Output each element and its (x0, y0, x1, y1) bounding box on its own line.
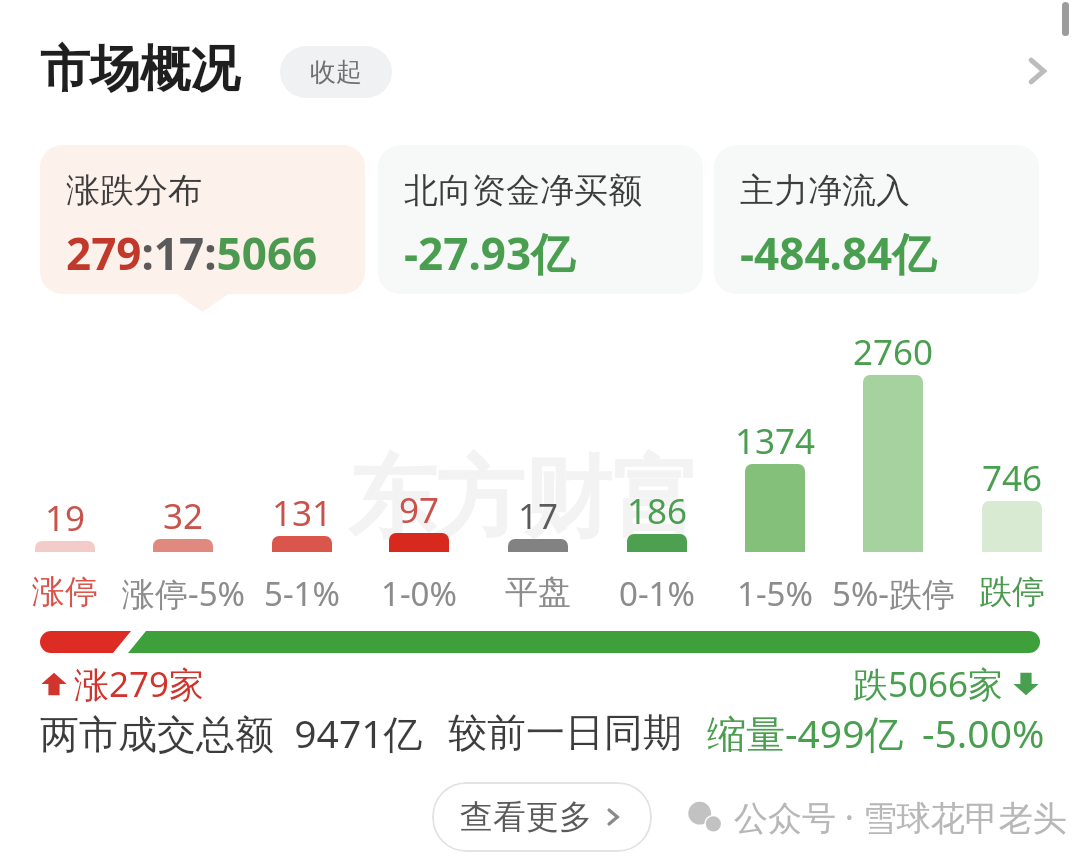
staticText: 市场概况 (40, 38, 240, 101)
staticText: 涨停-5% (122, 571, 245, 616)
staticText: 查看更多 (460, 796, 592, 838)
staticText: 跌5066家 (853, 660, 1004, 708)
button[interactable]: 涨跌分布 (40, 145, 365, 294)
staticText: 涨跌分布 (66, 169, 202, 212)
staticText: 32 (163, 492, 204, 540)
staticText: 5-1% (264, 571, 340, 616)
staticText: 746 (982, 454, 1043, 502)
staticText: 1-0% (381, 571, 457, 616)
staticText: 北向资金净买额 (404, 169, 642, 212)
staticText: 涨279家 (74, 660, 205, 708)
staticText: 东方财富 (348, 443, 700, 554)
button[interactable]: 北向资金净买额 (378, 145, 703, 294)
staticText: 131 (272, 489, 333, 537)
staticText: 缩量-499亿 (707, 706, 904, 759)
staticText: 涨停 (32, 571, 98, 613)
button[interactable]: 主力净流入 (714, 145, 1039, 294)
staticText: 公众号 · 雪球花甲老头 (734, 794, 1067, 840)
staticText: 收起 (310, 56, 362, 89)
staticText: 较前一日同期 (448, 708, 682, 757)
staticText: 97 (399, 486, 440, 534)
staticText: 主力净流入 (740, 169, 910, 212)
staticText: 1374 (735, 417, 816, 465)
staticText: 279:17:5066 (66, 223, 318, 283)
button[interactable]: 收起 (280, 46, 392, 98)
staticText: -484.84亿 (740, 223, 937, 283)
button[interactable]: 查看更多 (432, 782, 652, 852)
staticText: 0-1% (619, 571, 695, 616)
staticText: -5.00% (922, 706, 1045, 759)
button[interactable]: More (1008, 42, 1066, 100)
staticText: 两市成交总额 9471亿 (40, 706, 423, 759)
staticText: 19 (45, 494, 86, 542)
staticText: 平盘 (505, 571, 571, 613)
staticText: 2760 (853, 328, 934, 376)
staticText: 1-5% (737, 571, 813, 616)
staticText: 5%-跌停 (832, 571, 955, 616)
staticText: 跌停 (979, 571, 1045, 613)
staticText: -27.93亿 (404, 223, 576, 283)
staticText: 186 (627, 487, 688, 535)
staticText: 17 (518, 492, 559, 540)
